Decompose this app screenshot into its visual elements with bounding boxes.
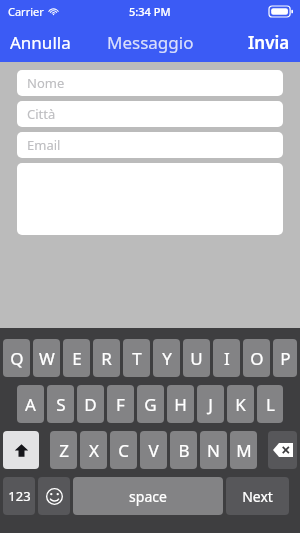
button[interactable]: Backspace <box>268 431 297 469</box>
staticText: H <box>174 393 187 416</box>
button[interactable]: Emoji <box>38 477 70 515</box>
staticText: Annulla <box>10 31 71 54</box>
button[interactable]: E <box>63 339 90 377</box>
staticText: Q <box>10 347 24 370</box>
staticText: C <box>118 439 129 462</box>
button[interactable]: F <box>107 385 134 423</box>
button[interactable]: Q <box>3 339 30 377</box>
button[interactable]: P <box>273 339 297 377</box>
staticText: F <box>116 393 125 416</box>
staticText: V <box>148 439 159 462</box>
button[interactable]: Nome <box>17 70 283 96</box>
staticText: X <box>89 439 99 462</box>
button[interactable]: R <box>93 339 120 377</box>
staticText: B <box>178 439 190 462</box>
button[interactable]: M <box>230 431 257 469</box>
staticText: N <box>207 439 220 462</box>
button[interactable]: space <box>73 477 223 515</box>
staticText: Next <box>242 487 273 506</box>
staticText: D <box>84 393 97 416</box>
staticText: Invia <box>248 31 290 54</box>
button[interactable]: L <box>257 385 283 423</box>
button[interactable]: U <box>183 339 210 377</box>
staticText: S <box>56 393 66 416</box>
staticText: 123 <box>8 487 31 505</box>
staticText: space <box>129 487 167 506</box>
button[interactable]: Città <box>17 101 283 127</box>
button[interactable]: Invia <box>238 22 300 62</box>
staticText: M <box>236 439 252 462</box>
button[interactable]: V <box>140 431 167 469</box>
staticText: J <box>208 393 213 416</box>
staticText: Città <box>27 105 56 123</box>
staticText: R <box>101 347 112 370</box>
button[interactable]: J <box>197 385 224 423</box>
staticText: K <box>235 393 246 416</box>
staticText: W <box>39 347 55 370</box>
button[interactable]: W <box>33 339 60 377</box>
button[interactable]: Next <box>226 477 289 515</box>
staticText: I <box>224 347 230 370</box>
button[interactable]: T <box>123 339 150 377</box>
staticText: Nome <box>27 74 65 92</box>
staticText: P <box>280 347 291 370</box>
staticText: Z <box>59 439 69 462</box>
button[interactable]: C <box>110 431 137 469</box>
button[interactable]: D <box>77 385 104 423</box>
button[interactable]: 123 <box>3 477 35 515</box>
staticText: E <box>72 347 82 370</box>
button[interactable]: Email <box>17 132 283 158</box>
staticText: 5:34 PM <box>129 4 171 19</box>
staticText: U <box>190 347 203 370</box>
staticText: Y <box>162 347 172 370</box>
staticText: G <box>144 393 157 416</box>
staticText: L <box>266 393 275 416</box>
staticText: A <box>25 393 36 416</box>
button[interactable]: O <box>243 339 270 377</box>
button[interactable]: Shift <box>3 431 39 469</box>
button[interactable]: K <box>227 385 254 423</box>
staticText: Carrier <box>8 4 44 19</box>
button[interactable]: H <box>167 385 194 423</box>
button[interactable]: A <box>17 385 44 423</box>
staticText: O <box>250 347 264 370</box>
staticText: Messaggio <box>107 31 194 54</box>
button[interactable]: X <box>80 431 107 469</box>
button[interactable]: B <box>170 431 197 469</box>
staticText: Email <box>27 136 61 154</box>
button[interactable]: Z <box>50 431 77 469</box>
button[interactable]: G <box>137 385 164 423</box>
staticText: T <box>132 347 142 370</box>
button[interactable]: Y <box>153 339 180 377</box>
button[interactable]: I <box>213 339 240 377</box>
button[interactable]: N <box>200 431 227 469</box>
button[interactable]: S <box>47 385 74 423</box>
button[interactable]: Annulla <box>0 22 81 62</box>
